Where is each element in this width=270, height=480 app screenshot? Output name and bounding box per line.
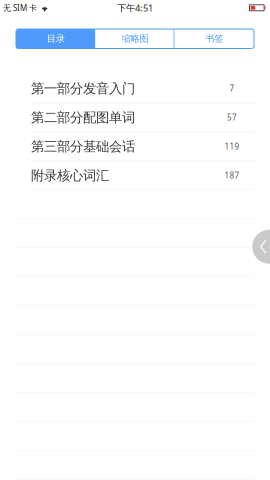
staticText: 书签 [205, 33, 223, 44]
staticText: 第二部分配图单词 [31, 109, 135, 126]
button[interactable]: Show side panel [252, 230, 270, 264]
staticText: 119 [224, 141, 239, 152]
button[interactable]: 第二部分配图单词 [0, 103, 270, 132]
button[interactable]: 缩略图 [95, 29, 175, 48]
staticText: 附录核心词汇 [31, 167, 109, 184]
staticText: 187 [224, 170, 239, 181]
button[interactable]: 第三部分基础会话 [0, 132, 270, 161]
staticText: 第三部分基础会话 [31, 138, 135, 155]
staticText: 下午4:51 [117, 2, 153, 14]
button[interactable]: 目录 [16, 29, 95, 48]
staticText: 缩略图 [121, 33, 148, 44]
button[interactable]: 附录核心词汇 [0, 161, 270, 190]
button[interactable]: 书签 [175, 29, 254, 48]
staticText: 第一部分发音入门 [31, 80, 135, 97]
staticText: 目录 [47, 33, 65, 44]
button[interactable]: 第一部分发音入门 [0, 74, 270, 103]
staticText: 57 [227, 112, 237, 123]
staticText: 7 [229, 83, 234, 94]
staticText: 无 SIM 卡 [3, 2, 37, 13]
